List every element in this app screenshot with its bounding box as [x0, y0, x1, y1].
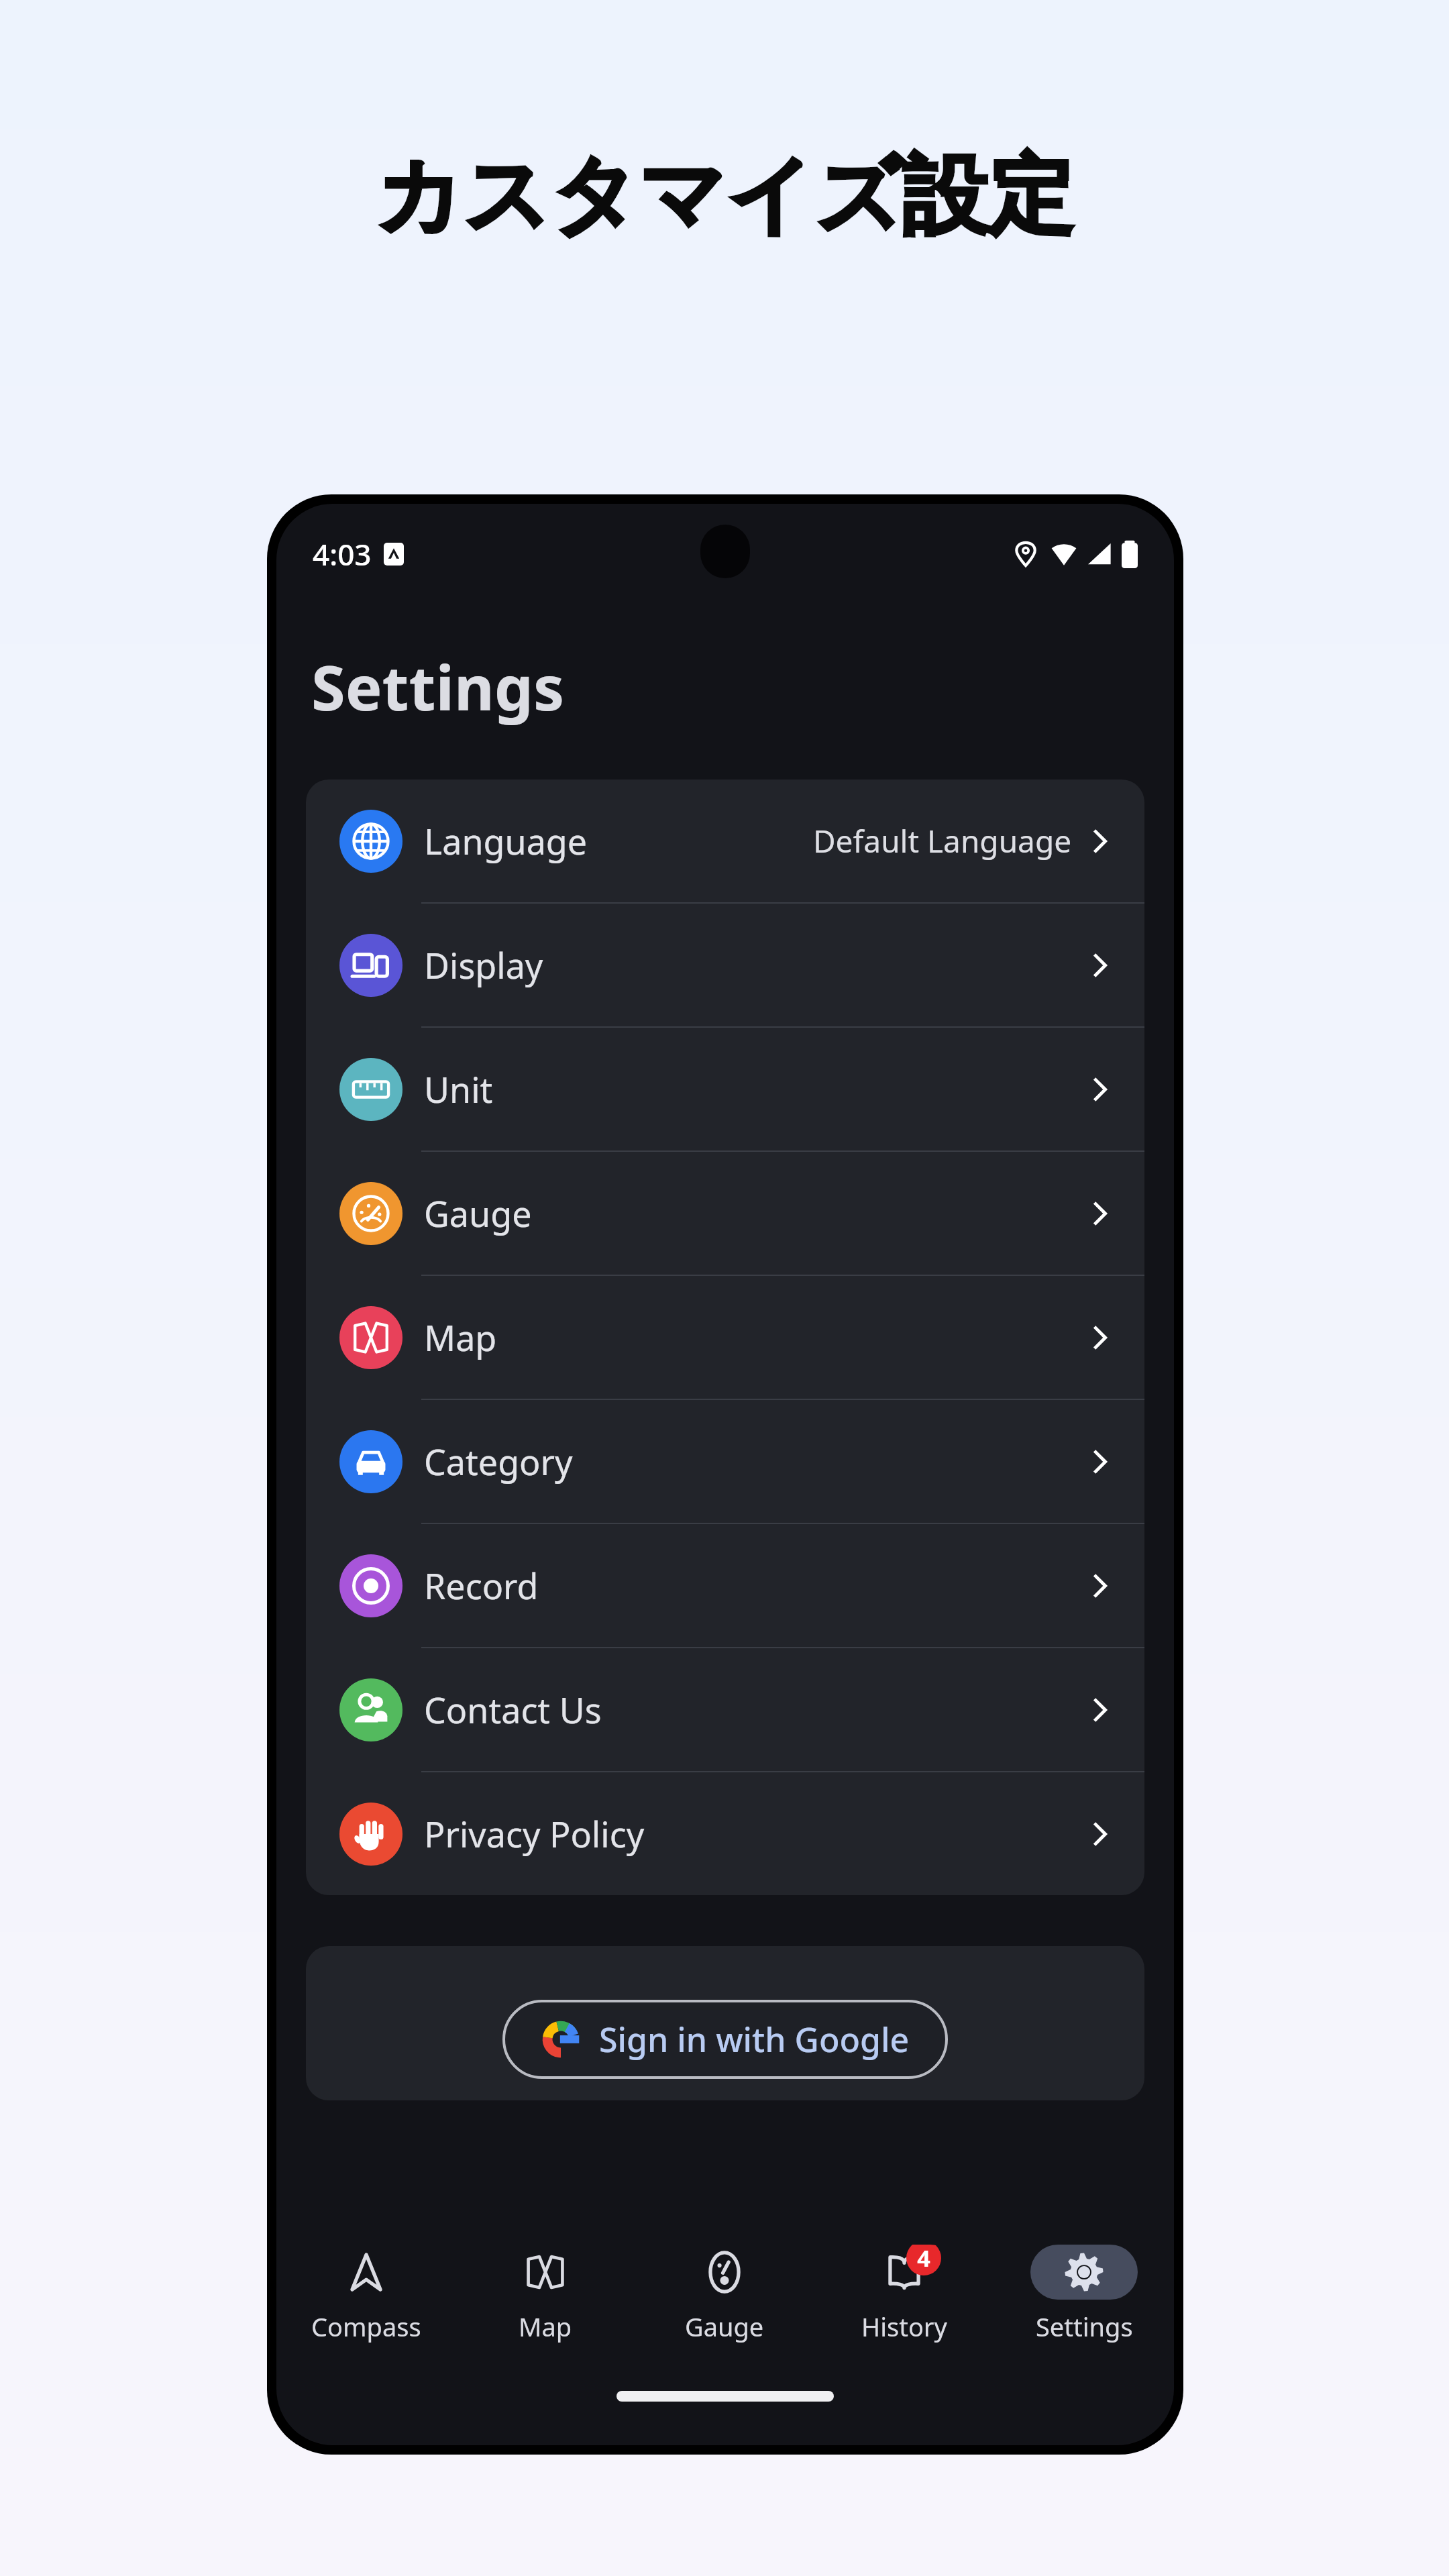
- staticText: 4:03: [313, 534, 372, 574]
- button[interactable]: Settings: [994, 2217, 1174, 2371]
- button[interactable]: Unit: [306, 1028, 1144, 1150]
- staticText: History: [861, 2309, 947, 2344]
- staticText: Compass: [311, 2309, 421, 2344]
- button[interactable]: Language: [306, 780, 1144, 902]
- staticText: Language: [424, 817, 588, 865]
- staticText: Privacy Policy: [424, 1810, 645, 1858]
- staticText: Unit: [424, 1065, 493, 1113]
- button[interactable]: Gauge: [306, 1152, 1144, 1275]
- button[interactable]: Map: [455, 2217, 635, 2371]
- button[interactable]: Contact Us: [306, 1648, 1144, 1771]
- button[interactable]: Display: [306, 904, 1144, 1026]
- staticText: Display: [424, 941, 543, 989]
- button[interactable]: Compass: [276, 2217, 455, 2371]
- staticText: Gauge: [685, 2309, 764, 2344]
- button[interactable]: 4: [814, 2217, 994, 2371]
- staticText: Sign in with Google: [599, 2017, 910, 2062]
- staticText: Record: [424, 1562, 539, 1609]
- button[interactable]: Record: [306, 1524, 1144, 1647]
- staticText: Settings: [1036, 2309, 1133, 2344]
- staticText: Contact Us: [424, 1686, 602, 1733]
- button[interactable]: Sign in with Google: [506, 1999, 945, 2080]
- staticText: Map: [519, 2309, 572, 2344]
- staticText: Gauge: [424, 1189, 532, 1237]
- staticText: Settings: [311, 645, 565, 729]
- button[interactable]: Map: [306, 1276, 1144, 1399]
- button[interactable]: Category: [306, 1400, 1144, 1523]
- staticText: Category: [424, 1438, 573, 1485]
- staticText: Map: [424, 1313, 497, 1361]
- staticText: 4: [917, 2245, 930, 2273]
- staticText: カスタマイズ設定: [375, 142, 1074, 250]
- button[interactable]: Gauge: [635, 2217, 814, 2371]
- staticText: Default Language: [813, 820, 1072, 862]
- button[interactable]: Privacy Policy: [306, 1772, 1144, 1895]
